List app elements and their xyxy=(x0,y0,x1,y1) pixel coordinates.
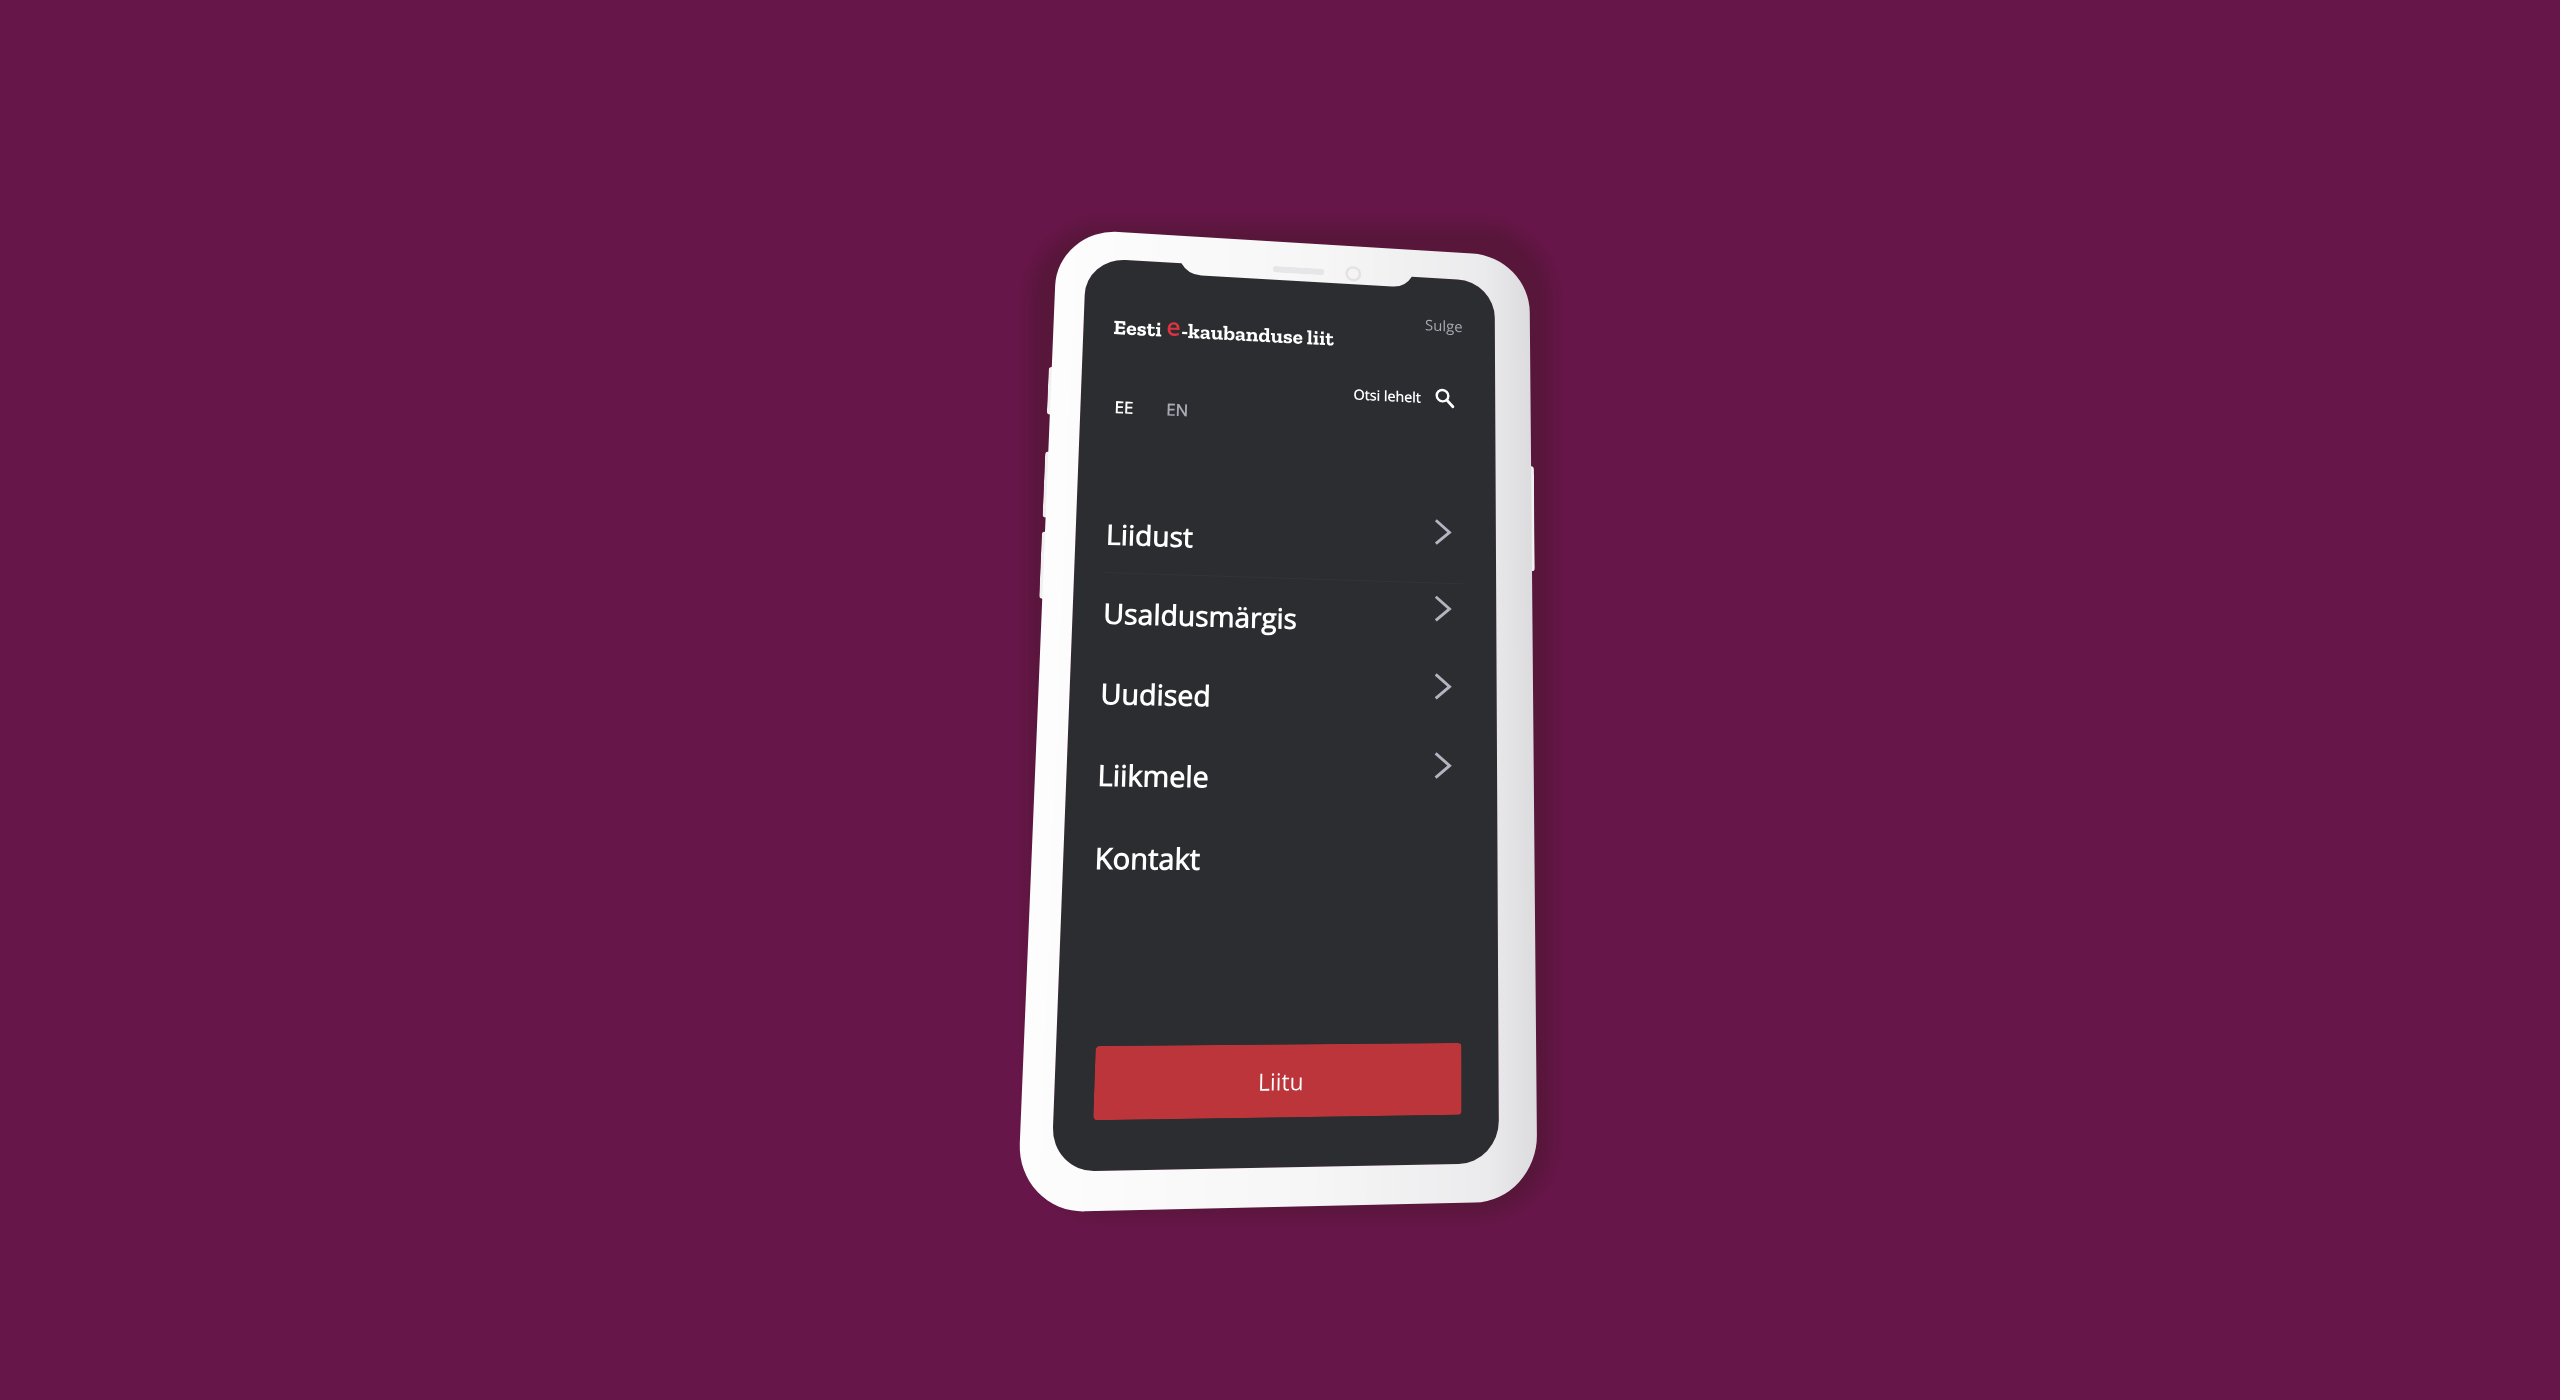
staticText: Liitu xyxy=(1258,1064,1304,1097)
staticText: EE xyxy=(1114,396,1134,418)
button[interactable]: EE xyxy=(1114,396,1134,418)
staticText: e xyxy=(1166,310,1182,342)
staticText: Liikmele xyxy=(1097,755,1209,795)
button[interactable]: Eesti xyxy=(1113,307,1334,350)
other: Search xyxy=(1434,388,1455,409)
button[interactable]: Liikmele xyxy=(1065,733,1497,820)
staticText: EN xyxy=(1166,398,1189,421)
staticText: Kontakt xyxy=(1094,838,1201,878)
button[interactable]: Sulge xyxy=(1425,315,1463,337)
staticText: Uudised xyxy=(1100,674,1211,714)
staticText: Sulge xyxy=(1425,315,1463,337)
button[interactable]: Liidust xyxy=(1074,493,1496,585)
button[interactable]: Otsi lehelt xyxy=(1353,384,1455,409)
staticText: -kaubanduse liit xyxy=(1181,318,1334,350)
staticText: Eesti xyxy=(1113,314,1167,341)
staticText: Otsi lehelt xyxy=(1353,385,1421,406)
button[interactable]: Uudised xyxy=(1068,652,1497,741)
button[interactable]: EN xyxy=(1166,398,1189,421)
button[interactable]: Usaldusmärgis xyxy=(1071,572,1496,662)
button[interactable]: Liitu xyxy=(1093,1043,1462,1120)
staticText: Usaldusmärgis xyxy=(1103,594,1297,637)
button[interactable]: Kontakt xyxy=(1062,815,1498,901)
staticText: Liidust xyxy=(1105,515,1194,555)
